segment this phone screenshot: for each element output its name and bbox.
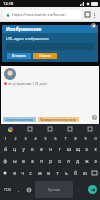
staticText: з <box>85 146 88 152</box>
button[interactable]: а <box>28 155 37 167</box>
button[interactable]: щ <box>73 143 82 155</box>
staticText: е <box>40 146 43 152</box>
button[interactable]: Русский <box>35 181 73 198</box>
button[interactable]: к <box>28 143 37 155</box>
staticText: ?123 <box>4 188 11 192</box>
staticText: ы <box>13 158 17 164</box>
button[interactable]: Close <box>91 23 96 28</box>
button[interactable]: Voice <box>80 124 100 134</box>
staticText: щ <box>76 146 80 152</box>
staticText: ц <box>13 146 16 152</box>
staticText: ь <box>65 170 68 176</box>
button[interactable]: р <box>46 155 55 167</box>
staticText: э <box>94 158 97 164</box>
staticText: л <box>67 158 70 164</box>
button[interactable]: з <box>82 143 91 155</box>
staticText: 0 <box>94 136 97 141</box>
staticText: 1 <box>4 136 7 141</box>
button[interactable]: б <box>71 167 80 179</box>
staticText: Вставить <box>12 54 26 58</box>
button[interactable]: Stickers <box>20 124 40 134</box>
button[interactable]: 2 <box>10 134 20 143</box>
button[interactable]: 8 <box>70 134 80 143</box>
button[interactable]: ?123 <box>0 179 14 200</box>
staticText: д <box>76 158 79 164</box>
button[interactable]: н <box>46 143 55 155</box>
button[interactable]: . <box>74 179 84 200</box>
staticText: не устройства: 123 д-ай <box>8 81 47 86</box>
staticText: ч <box>21 170 24 176</box>
button[interactable]: с <box>26 167 35 179</box>
button[interactable]: 3 <box>20 134 30 143</box>
button[interactable]: ю <box>80 167 89 179</box>
staticText: 8 <box>74 136 77 141</box>
staticText: 3 <box>24 136 27 141</box>
button[interactable]: ш <box>64 143 73 155</box>
staticText: м <box>38 170 42 176</box>
staticText: в <box>22 158 25 164</box>
button[interactable]: я <box>10 167 18 179</box>
button[interactable]: Change language <box>24 179 34 200</box>
button[interactable]: Tabs <box>84 11 91 18</box>
staticText: г <box>59 146 61 152</box>
button[interactable]: ф <box>0 155 10 167</box>
staticText: 7 <box>64 136 67 141</box>
staticText: я <box>13 170 16 176</box>
staticText: с <box>29 170 32 176</box>
button[interactable]: ь <box>62 167 71 179</box>
button[interactable]: т <box>53 167 62 179</box>
button[interactable]: 4 <box>30 134 40 143</box>
button[interactable]: в <box>19 155 28 167</box>
button[interactable]: ы <box>10 155 19 167</box>
button[interactable]: 1 <box>0 134 10 143</box>
button[interactable]: 9 <box>80 134 90 143</box>
button[interactable]: й <box>0 143 10 155</box>
staticText: о <box>58 158 61 164</box>
button[interactable]: ч <box>18 167 26 179</box>
button[interactable]: 5 <box>40 134 50 143</box>
staticText: https://one-karim.ru/forum <box>12 12 66 18</box>
staticText: 5 <box>44 136 47 141</box>
staticText: 4 <box>34 136 37 141</box>
button[interactable]: Отмена <box>33 53 57 59</box>
button[interactable]: 0 <box>90 134 100 143</box>
button[interactable]: , <box>14 179 24 200</box>
button[interactable]: Backspace <box>89 167 100 179</box>
staticText: х <box>94 146 97 152</box>
button[interactable]: ж <box>82 155 91 167</box>
button[interactable]: Предварительный просмотр <box>38 117 79 122</box>
button[interactable]: 7 <box>60 134 70 143</box>
button[interactable]: Вставить <box>7 53 31 59</box>
button[interactable]: г <box>55 143 64 155</box>
button[interactable]: л <box>64 155 73 167</box>
button[interactable]: э <box>91 155 100 167</box>
button[interactable]: у <box>19 143 28 155</box>
button[interactable]: х <box>91 143 100 155</box>
button[interactable]: Сохранить изменения <box>3 117 36 122</box>
button[interactable]: м <box>35 167 44 179</box>
staticText: й <box>4 146 7 152</box>
staticText: . <box>78 187 80 192</box>
button[interactable]: и <box>44 167 53 179</box>
button[interactable]: More options <box>91 12 97 18</box>
staticText: т <box>56 170 59 176</box>
staticText: , <box>18 187 20 192</box>
button[interactable]: Enter <box>84 179 100 200</box>
staticText: Изображение <box>6 26 42 33</box>
button[interactable]: Shift <box>0 167 10 179</box>
button[interactable]: 6 <box>50 134 60 143</box>
button[interactable]: https://one-karim.ru/forum <box>3 10 82 19</box>
staticText: URL-адрес изображения <box>6 36 49 41</box>
button[interactable]: п <box>37 155 46 167</box>
staticText: ш <box>67 146 71 152</box>
staticText: ? <box>94 116 96 120</box>
button[interactable]: GIF <box>40 124 60 134</box>
staticText: р <box>49 158 52 164</box>
button[interactable]: е <box>37 143 46 155</box>
button[interactable]: ц <box>10 143 19 155</box>
button[interactable]: о <box>55 155 64 167</box>
button[interactable]: Help <box>92 115 97 120</box>
button[interactable]: Settings <box>60 124 80 134</box>
button[interactable]: д <box>73 155 82 167</box>
